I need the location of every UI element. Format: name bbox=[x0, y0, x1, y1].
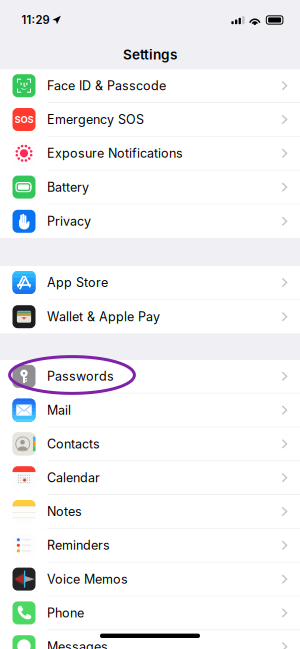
staticText: Passwords bbox=[47, 369, 114, 384]
staticText: Face ID & Passcode bbox=[47, 78, 166, 93]
staticText: App Store bbox=[47, 275, 108, 290]
button[interactable]: Calendar bbox=[0, 461, 300, 495]
staticText: Battery bbox=[47, 180, 89, 194]
staticText: 11:29 bbox=[21, 13, 49, 27]
staticText: Reminders bbox=[47, 538, 110, 553]
button[interactable]: App Store bbox=[0, 266, 300, 300]
staticText: Phone bbox=[47, 605, 84, 620]
button[interactable]: Exposure Notifications bbox=[0, 137, 300, 171]
staticText: Messages bbox=[47, 639, 108, 649]
staticText: Emergency SOS bbox=[47, 112, 144, 127]
staticText: Settings bbox=[123, 46, 177, 63]
button[interactable]: SOS bbox=[0, 103, 300, 137]
button[interactable]: Contacts bbox=[0, 427, 300, 461]
button[interactable]: Voice Memos bbox=[0, 563, 300, 596]
button[interactable]: Messages bbox=[0, 630, 300, 649]
button[interactable]: Notes bbox=[0, 495, 300, 529]
button[interactable]: Phone bbox=[0, 596, 300, 630]
staticText: Calendar bbox=[47, 470, 100, 485]
button[interactable]: Mail bbox=[0, 394, 300, 427]
staticText: Mail bbox=[47, 403, 71, 417]
staticText: Exposure Notifications bbox=[47, 146, 183, 161]
staticText: Contacts bbox=[47, 436, 100, 451]
button[interactable]: Passwords bbox=[0, 360, 300, 394]
staticText: Privacy bbox=[47, 214, 91, 229]
button[interactable]: Face ID & Passcode bbox=[0, 69, 300, 103]
button[interactable]: Reminders bbox=[0, 529, 300, 563]
staticText: Voice Memos bbox=[47, 572, 128, 586]
button[interactable]: Battery bbox=[0, 171, 300, 204]
staticText: Notes bbox=[47, 504, 82, 519]
staticText: SOS bbox=[14, 114, 33, 125]
button[interactable]: Wallet & Apple Pay bbox=[0, 300, 300, 334]
staticText: Wallet & Apple Pay bbox=[47, 309, 160, 324]
button[interactable]: Privacy bbox=[0, 204, 300, 238]
